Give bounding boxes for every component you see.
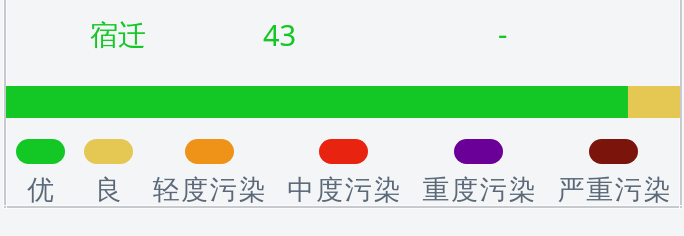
staticText: 优 xyxy=(27,173,56,206)
button[interactable]: 中度污染 xyxy=(276,118,411,206)
button[interactable]: 优 xyxy=(7,118,74,206)
button[interactable]: 良 xyxy=(74,118,142,206)
button[interactable]: 重度污染 xyxy=(411,118,546,206)
button[interactable]: 严重污染 xyxy=(546,118,681,206)
button[interactable]: 宿迁 xyxy=(90,18,146,53)
staticText: 轻度污染 xyxy=(152,173,268,206)
staticText: 重度污染 xyxy=(422,173,538,206)
other: 无变化 xyxy=(498,14,508,53)
staticText: 宿迁 xyxy=(90,18,146,53)
staticText: 43 xyxy=(263,15,297,54)
staticText: - xyxy=(498,14,508,53)
staticText: 严重污染 xyxy=(557,173,673,206)
button[interactable]: 轻度污染 xyxy=(142,118,276,206)
button[interactable] xyxy=(6,0,680,86)
staticText: 中度污染 xyxy=(287,173,403,206)
staticText: 良 xyxy=(95,173,124,206)
